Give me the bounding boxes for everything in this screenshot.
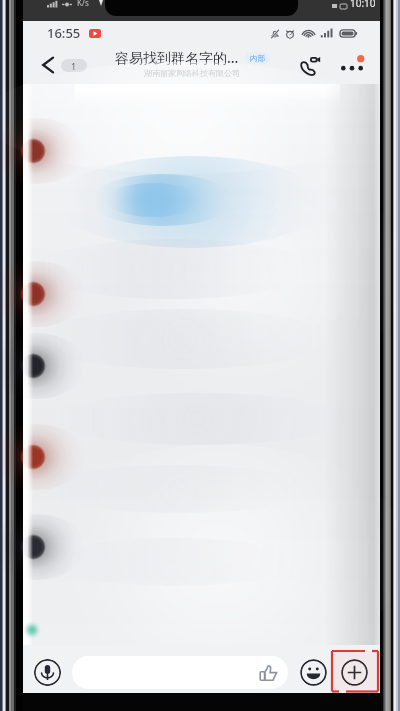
button[interactable]: Back [36, 49, 93, 81]
button[interactable]: Emoji [300, 659, 327, 686]
staticText: 10:10 [350, 0, 376, 10]
button[interactable]: Video call [294, 49, 330, 81]
staticText: K/s [77, 0, 89, 8]
button[interactable] [72, 656, 288, 689]
staticText: 湖南丽家网络科技有限公司 [144, 68, 240, 78]
button[interactable]: More actions [341, 659, 368, 686]
staticText: 容易找到群名字的... [115, 48, 239, 67]
button[interactable]: Voice message [34, 659, 61, 686]
staticText: 1 [71, 60, 77, 72]
staticText: 16:55 [47, 24, 81, 42]
staticText: 内部 [250, 54, 265, 63]
button[interactable]: More options [335, 51, 369, 81]
